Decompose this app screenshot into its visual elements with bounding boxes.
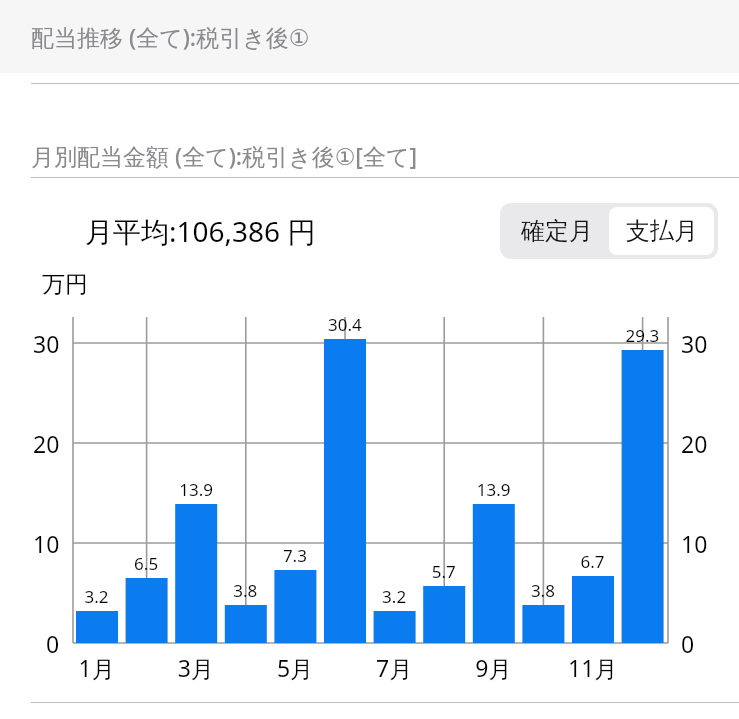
button[interactable]: 支払月 xyxy=(609,207,714,255)
staticText: 月別配当金額 (全て):税引き後①[全て] xyxy=(31,140,418,171)
staticText: 月平均:106,386 円 xyxy=(85,212,316,250)
staticText: 配当推移 (全て):税引き後① xyxy=(31,21,310,52)
staticText: 支払月 xyxy=(626,216,698,246)
button[interactable]: 確定月 xyxy=(504,207,609,255)
staticText: 万円 xyxy=(42,270,88,299)
staticText: 確定月 xyxy=(521,216,593,246)
